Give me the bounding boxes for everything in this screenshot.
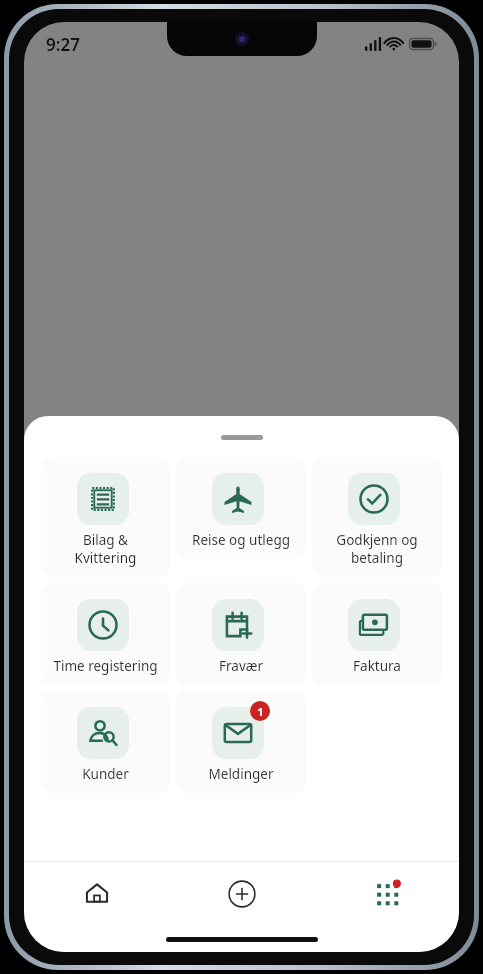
staticText: Faktura bbox=[316, 657, 438, 675]
staticText: Kunder bbox=[45, 765, 166, 783]
button[interactable]: 1 bbox=[176, 691, 306, 793]
staticText: Godkjenn og betaling bbox=[316, 531, 438, 567]
staticText: 1 bbox=[257, 704, 264, 719]
button[interactable]: Faktura bbox=[312, 583, 442, 685]
staticText: Time registering bbox=[45, 657, 166, 675]
staticText: Reise og utlegg bbox=[180, 531, 302, 549]
button[interactable]: Home bbox=[24, 862, 169, 926]
button[interactable]: Kunder bbox=[41, 691, 170, 793]
button[interactable]: Apps bbox=[314, 862, 459, 926]
staticText: Meldinger bbox=[180, 765, 302, 783]
staticText: Bilag & Kvittering bbox=[45, 531, 166, 567]
button[interactable]: Reise og utlegg bbox=[176, 457, 306, 559]
button[interactable]: Fravær bbox=[176, 583, 306, 685]
button[interactable]: Godkjenn og betaling bbox=[312, 457, 442, 577]
button[interactable]: Bilag & Kvittering bbox=[41, 457, 170, 577]
staticText: Fravær bbox=[180, 657, 302, 675]
button[interactable]: Time registering bbox=[41, 583, 170, 685]
button[interactable]: Add bbox=[169, 862, 314, 926]
staticText: 9:27 bbox=[46, 33, 80, 56]
